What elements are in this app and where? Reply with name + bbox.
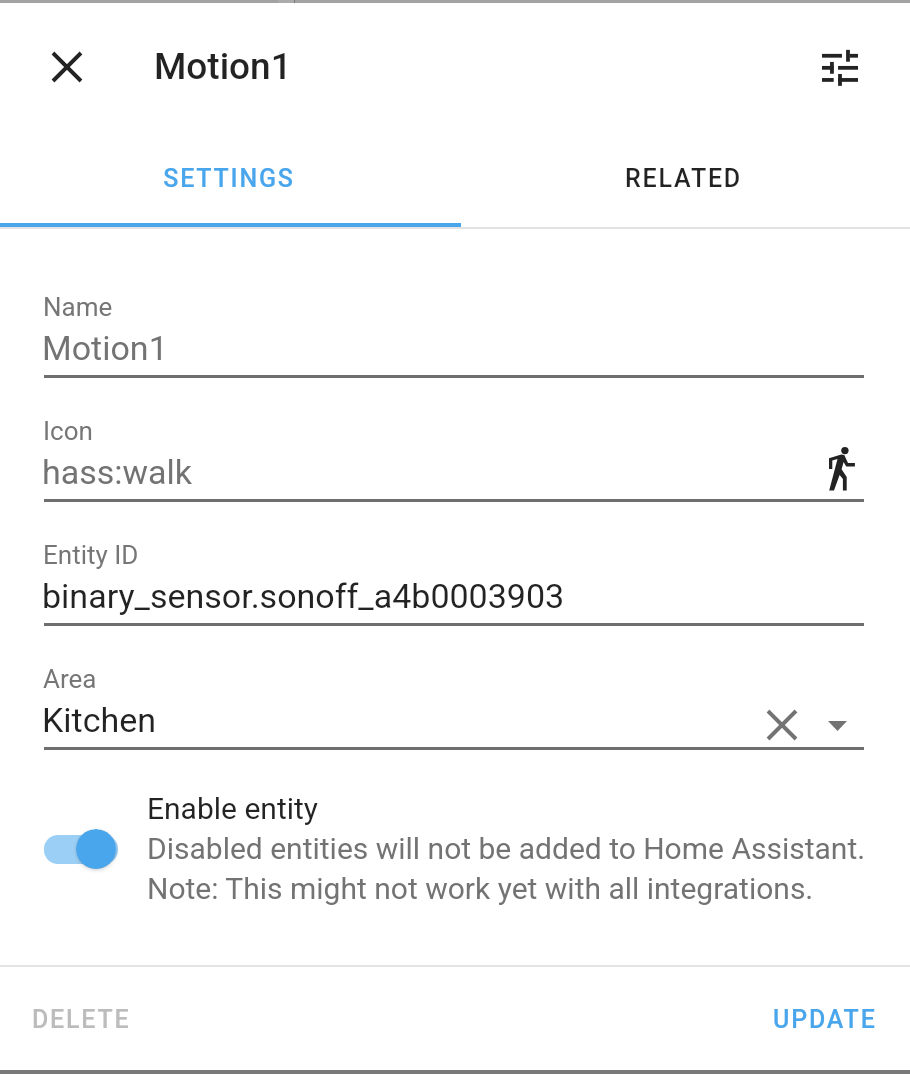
- staticText: RELATED: [625, 164, 742, 193]
- staticText: SETTINGS: [163, 164, 295, 193]
- staticText: binary_sensor.sonoff_a4b0003903: [42, 576, 565, 616]
- button[interactable]: DELETE: [16, 993, 147, 1046]
- staticText: Kitchen: [42, 700, 157, 740]
- staticText: Area: [43, 664, 97, 694]
- staticText: DELETE: [32, 1005, 131, 1034]
- staticText: Name: [43, 292, 113, 322]
- staticText: Note: This might not work yet with all i…: [147, 871, 814, 906]
- button[interactable]: [44, 652, 864, 750]
- button[interactable]: [44, 280, 864, 378]
- button[interactable]: Clear area: [754, 699, 810, 751]
- staticText: Disabled entities will not be added to H…: [147, 831, 866, 866]
- staticText: Entity ID: [43, 540, 139, 570]
- staticText: Icon: [43, 416, 93, 446]
- button[interactable]: UPDATE: [757, 993, 893, 1046]
- button[interactable]: [44, 528, 864, 626]
- button[interactable]: Settings: [800, 27, 880, 107]
- staticText: UPDATE: [773, 1005, 877, 1034]
- staticText: Motion1: [154, 45, 292, 88]
- button[interactable]: [44, 404, 864, 502]
- button[interactable]: SETTINGS: [0, 133, 455, 223]
- staticText: Motion1: [42, 328, 168, 368]
- staticText: Enable entity: [147, 791, 319, 826]
- button[interactable]: Close: [27, 27, 107, 107]
- button[interactable]: Enable entity: [0, 780, 910, 920]
- staticText: hass:walk: [42, 452, 193, 492]
- button[interactable]: Show areas: [811, 700, 863, 752]
- button[interactable]: RELATED: [455, 133, 910, 223]
